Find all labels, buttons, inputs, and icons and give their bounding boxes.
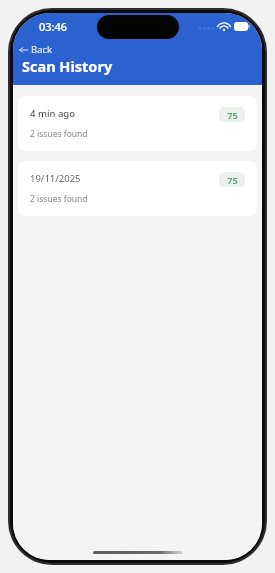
staticText: 75 <box>227 174 238 186</box>
staticText: 75 <box>227 109 238 121</box>
staticText: 2 issues found <box>30 193 88 205</box>
staticText: Back <box>31 43 53 56</box>
staticText: Re <box>236 18 245 28</box>
staticText: 2 issues found <box>30 128 88 140</box>
staticText: 4 min ago <box>30 107 76 120</box>
staticText: 03:46 <box>39 19 68 34</box>
staticText: 19/11/2025 <box>30 172 81 185</box>
button[interactable]: 19/11/2025 <box>18 161 257 216</box>
button[interactable]: Back <box>13 41 61 58</box>
staticText: dol <box>250 541 259 549</box>
button[interactable]: 4 min ago <box>18 96 257 151</box>
staticText: Scan History <box>22 56 113 76</box>
